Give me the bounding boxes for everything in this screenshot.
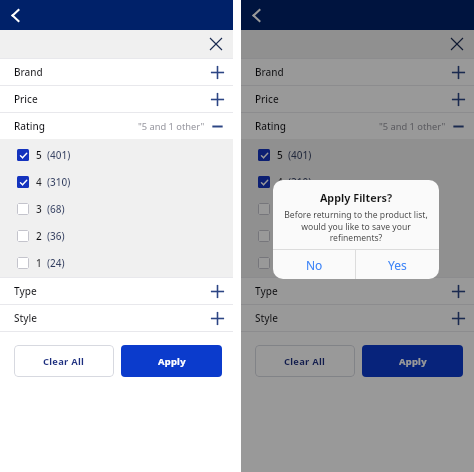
- staticText: "5 and 1 other": [138, 120, 205, 133]
- button[interactable]: 2: [17, 222, 233, 249]
- button[interactable]: Yes: [356, 250, 439, 279]
- staticText: Apply Filters?: [273, 190, 439, 205]
- button[interactable]: Back: [0, 0, 233, 30]
- staticText: 5: [277, 148, 283, 162]
- staticText: (401): [288, 148, 312, 162]
- staticText: Type: [255, 284, 278, 298]
- staticText: 2: [36, 229, 42, 243]
- staticText: Price: [255, 92, 279, 106]
- button[interactable]: Style: [241, 304, 474, 331]
- button[interactable]: 1: [17, 249, 233, 276]
- staticText: Style: [14, 311, 38, 325]
- staticText: No: [306, 257, 323, 273]
- staticText: Style: [255, 311, 279, 325]
- staticText: 1: [36, 256, 42, 270]
- button[interactable]: Clear All: [14, 345, 114, 377]
- staticText: "5 and 1 other": [379, 120, 446, 133]
- staticText: (36): [288, 229, 306, 243]
- staticText: Apply: [158, 355, 186, 368]
- button[interactable]: Apply: [121, 345, 222, 377]
- button[interactable]: 5: [17, 141, 233, 168]
- button[interactable]: No: [273, 250, 355, 279]
- staticText: (401): [47, 148, 71, 162]
- staticText: Apply: [399, 355, 427, 368]
- staticText: Yes: [388, 257, 407, 273]
- button[interactable]: Type: [0, 277, 233, 304]
- button[interactable]: Apply: [362, 345, 463, 377]
- staticText: Rating: [255, 119, 287, 133]
- staticText: Clear All: [43, 355, 85, 368]
- button[interactable]: Price: [241, 85, 474, 112]
- button[interactable]: Type: [241, 277, 474, 304]
- button[interactable]: 4: [17, 168, 233, 195]
- staticText: Before returning to the product list, wo…: [278, 209, 434, 243]
- staticText: Price: [14, 92, 38, 106]
- other: Back: [8, 8, 23, 23]
- button[interactable]: Brand: [0, 58, 233, 85]
- button[interactable]: 3: [17, 195, 233, 222]
- button[interactable]: Price: [0, 85, 233, 112]
- staticText: Brand: [255, 65, 284, 79]
- staticText: Brand: [14, 65, 43, 79]
- staticText: Rating: [14, 119, 46, 133]
- button[interactable]: 5: [258, 141, 474, 168]
- button[interactable]: Brand: [241, 58, 474, 85]
- staticText: 4: [277, 175, 283, 189]
- button[interactable]: 3: [258, 195, 474, 222]
- button[interactable]: 2: [258, 222, 474, 249]
- staticText: 4: [36, 175, 42, 189]
- button[interactable]: Style: [0, 304, 233, 331]
- staticText: (310): [288, 175, 312, 189]
- staticText: (24): [47, 256, 65, 270]
- staticText: (310): [47, 175, 71, 189]
- button[interactable]: Close: [448, 35, 466, 53]
- button[interactable]: Back: [241, 0, 474, 30]
- button[interactable]: Rating: [241, 112, 474, 139]
- staticText: (68): [47, 202, 65, 216]
- button[interactable]: Close: [207, 35, 225, 53]
- staticText: 5: [36, 148, 42, 162]
- button[interactable]: Rating: [0, 112, 233, 139]
- staticText: (68): [288, 202, 306, 216]
- staticText: 3: [36, 202, 42, 216]
- other: Back: [249, 8, 264, 23]
- button[interactable]: 1: [258, 249, 474, 276]
- staticText: (36): [47, 229, 65, 243]
- staticText: Type: [14, 284, 37, 298]
- button[interactable]: Clear All: [255, 345, 355, 377]
- staticText: Clear All: [284, 355, 326, 368]
- button[interactable]: 4: [258, 168, 474, 195]
